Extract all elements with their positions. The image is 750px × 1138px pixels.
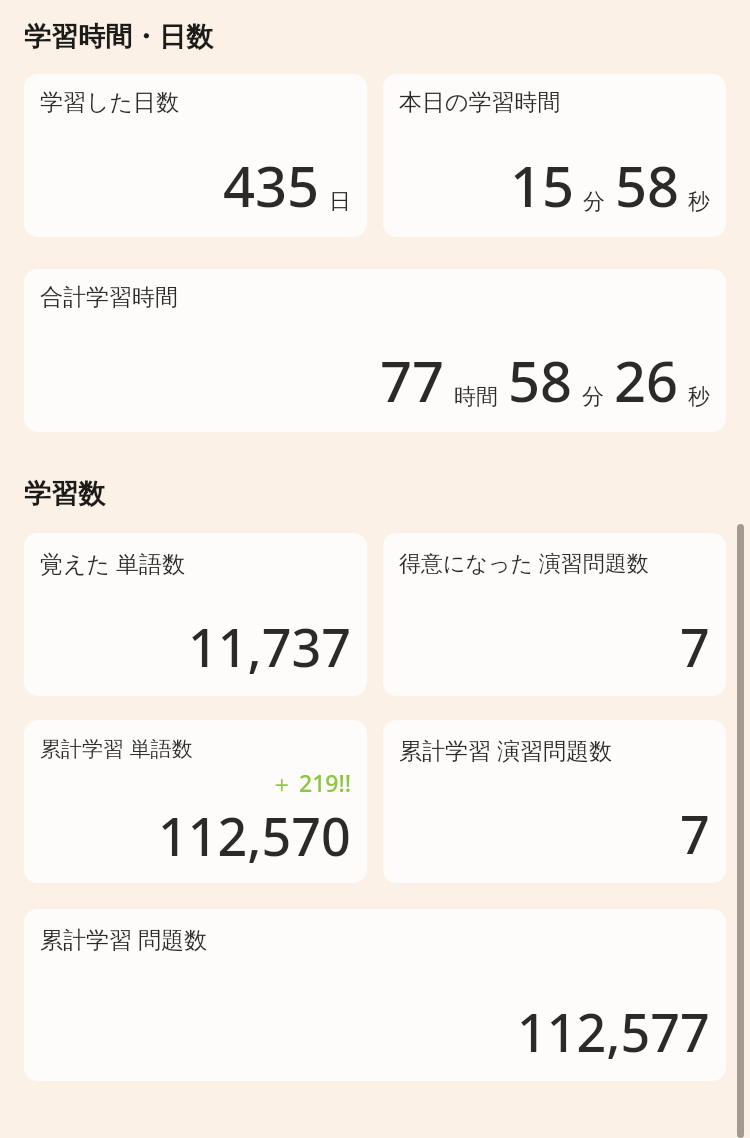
button[interactable]: 本日の学習時間 15 分 58 秒 (383, 74, 726, 237)
staticText: 26 (614, 342, 679, 418)
staticText: 7 (680, 611, 710, 682)
staticText: 77 (380, 342, 445, 418)
staticText: 435 (223, 147, 320, 223)
staticText: 累計学習 演習問題数 (399, 734, 612, 765)
staticText: 覚えた 単語数 (40, 547, 186, 578)
staticText: 時間 (454, 383, 498, 411)
staticText: 7 (680, 798, 710, 869)
button[interactable]: 覚えた 単語数 11,737 (24, 533, 367, 696)
staticText: 15 (510, 147, 575, 223)
button[interactable]: 学習した日数 435 日 (24, 74, 367, 237)
staticText: ＋ 219!! (269, 767, 351, 798)
button[interactable]: 累計学習 演習問題数 7 (383, 720, 726, 883)
staticText: 学習時間・日数 (24, 20, 213, 54)
staticText: 分 (583, 188, 605, 216)
staticText: 合計学習時間 (40, 283, 178, 312)
staticText: 11,737 (188, 611, 351, 682)
button[interactable]: 得意になった 演習問題数 7 (383, 533, 726, 696)
staticText: 累計学習 単語数 (40, 734, 193, 763)
staticText: 得意になった 演習問題数 (399, 547, 649, 577)
staticText: 112,577 (517, 996, 710, 1067)
button[interactable]: 累計学習 問題数 112,577 (24, 909, 726, 1081)
staticText: 本日の学習時間 (399, 88, 561, 117)
staticText: 秒 (688, 188, 710, 216)
staticText: 学習数 (24, 477, 105, 511)
staticText: 112,570 (158, 800, 351, 871)
button[interactable]: 合計学習時間 77 時間 58 分 26 秒 (24, 269, 726, 432)
staticText: 58 (615, 147, 680, 223)
button[interactable]: 累計学習 単語数 112,570 プラス219 (24, 720, 367, 883)
staticText: 日 (329, 188, 351, 216)
staticText: 累計学習 問題数 (40, 923, 207, 954)
staticText: 分 (582, 383, 604, 411)
staticText: 学習した日数 (40, 88, 180, 117)
staticText: 58 (508, 342, 573, 418)
staticText: 秒 (688, 383, 710, 411)
